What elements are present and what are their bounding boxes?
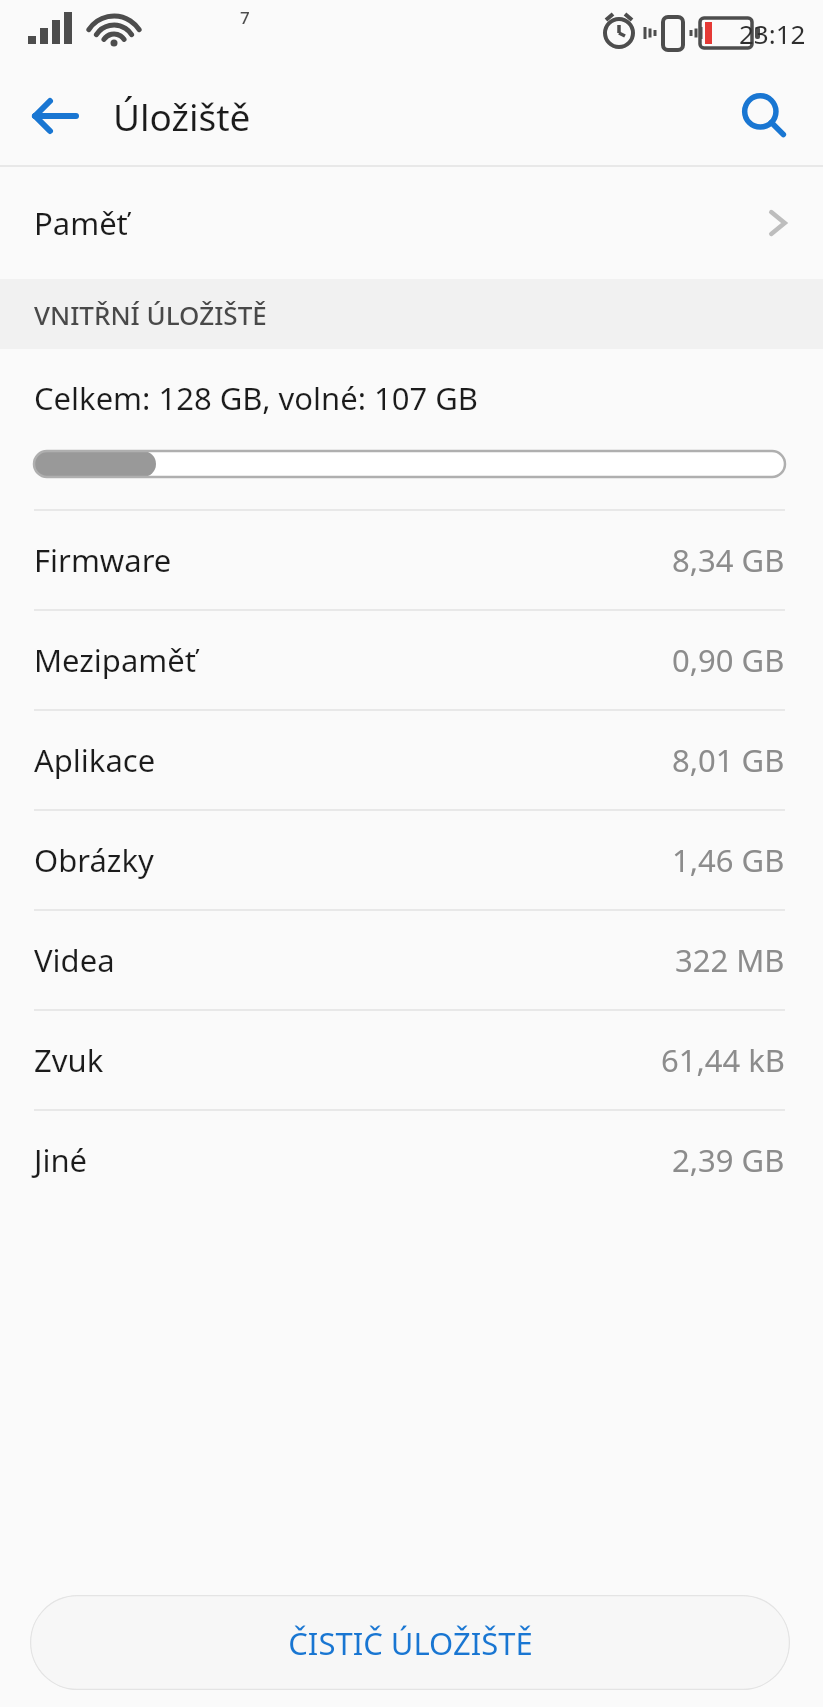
staticText: Obrázky [34, 839, 154, 881]
button[interactable]: Back [18, 79, 92, 153]
button[interactable]: Jiné [0, 1111, 823, 1209]
button[interactable]: Search [725, 77, 803, 155]
staticText: Zvuk [34, 1039, 104, 1081]
staticText: Videa [34, 939, 115, 981]
staticText: VNITŘNÍ ÚLOŽIŠTĚ [34, 297, 267, 332]
button[interactable]: Mezipaměť [0, 611, 823, 709]
staticText: 322 MB [675, 939, 785, 981]
staticText: 0,90 GB [672, 639, 785, 681]
staticText: 2,39 GB [672, 1139, 785, 1181]
button[interactable]: Paměť [0, 167, 823, 279]
staticText: 8,01 GB [672, 739, 785, 781]
staticText: Firmware [34, 539, 172, 581]
staticText: Jiné [34, 1139, 88, 1181]
staticText: 61,44 kB [661, 1039, 785, 1081]
staticText: 8,34 GB [672, 539, 785, 581]
button[interactable]: ČISTIČ ÚLOŽIŠTĚ [30, 1595, 790, 1690]
staticText: Úložiště [113, 91, 251, 141]
staticText: 1,46 GB [672, 839, 785, 881]
staticText: 23:12 [739, 16, 806, 51]
button[interactable]: Aplikace [0, 711, 823, 809]
button[interactable]: Zvuk [0, 1011, 823, 1109]
staticText: Aplikace [34, 739, 156, 781]
staticText: 7 [240, 6, 250, 29]
staticText: ČISTIČ ÚLOŽIŠTĚ [288, 1622, 533, 1664]
staticText: Paměť [34, 202, 128, 244]
staticText: Celkem: 128 GB, volné: 107 GB [34, 377, 478, 419]
staticText: Mezipaměť [34, 639, 196, 681]
button[interactable]: Videa [0, 911, 823, 1009]
button[interactable]: Obrázky [0, 811, 823, 909]
button[interactable]: Firmware [0, 511, 823, 609]
